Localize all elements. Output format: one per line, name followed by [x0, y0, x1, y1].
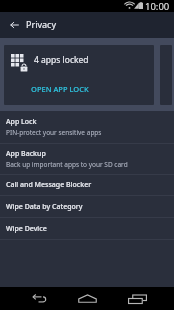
- staticText: App Lock: [6, 117, 37, 127]
- button[interactable]: Call and Message Blocker: [0, 175, 174, 195]
- button[interactable]: Back: [19, 287, 57, 310]
- staticText: Wipe Data by Category: [6, 202, 83, 212]
- button[interactable]: App Lock: [0, 111, 174, 143]
- staticText: 4 apps locked: [34, 54, 89, 66]
- button[interactable]: App Backup: [0, 144, 174, 174]
- staticText: Privacy: [26, 18, 57, 30]
- button[interactable]: Wipe Data by Category: [0, 196, 174, 217]
- button[interactable]: 4 apps locked: [4, 45, 154, 105]
- button[interactable]: Recents: [118, 287, 156, 310]
- button[interactable]: Wipe Device: [0, 218, 174, 239]
- button[interactable]: Home: [68, 287, 106, 310]
- staticText: App Backup: [6, 149, 46, 159]
- staticText: PIN-protect your sensitive apps: [6, 128, 102, 137]
- staticText: 10:00: [145, 0, 170, 12]
- staticText: Back up important apps to your SD card: [6, 160, 128, 169]
- staticText: OPEN APP LOCK: [31, 84, 89, 94]
- staticText: Wipe Device: [6, 224, 47, 234]
- staticText: Call and Message Blocker: [6, 180, 92, 190]
- button[interactable]: OPEN APP LOCK: [28, 81, 92, 97]
- button[interactable]: Back: [2, 12, 26, 38]
